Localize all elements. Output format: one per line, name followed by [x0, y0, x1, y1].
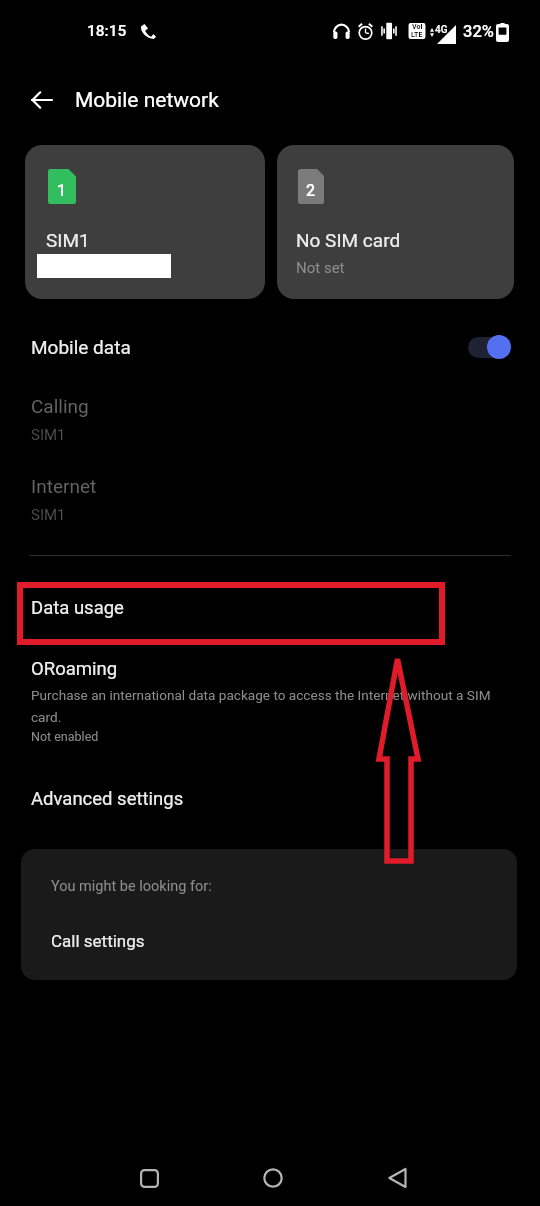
- button[interactable]: Home: [250, 1155, 296, 1201]
- staticText: Call settings: [51, 931, 145, 951]
- button[interactable]: Mobile data: [0, 318, 540, 376]
- button[interactable]: Call settings: [21, 911, 517, 971]
- staticText: 2: [306, 181, 316, 200]
- staticText: Not enabled: [31, 729, 99, 744]
- staticText: Calling: [31, 395, 89, 417]
- staticText: VoI: [412, 23, 423, 31]
- button[interactable]: Back: [374, 1155, 420, 1201]
- staticText: No SIM card: [296, 229, 401, 251]
- button[interactable]: Calling: [0, 393, 540, 453]
- button[interactable]: ORoaming: [0, 652, 540, 744]
- staticText: 32%: [463, 22, 494, 41]
- staticText: Mobile network: [75, 88, 219, 113]
- staticText: SIM1: [46, 229, 90, 251]
- staticText: Advanced settings: [31, 788, 184, 810]
- staticText: 1: [57, 181, 67, 200]
- staticText: LTE: [411, 31, 423, 39]
- staticText: Mobile data: [31, 336, 131, 358]
- staticText: SIM1: [31, 426, 66, 444]
- staticText: SIM1: [31, 506, 66, 524]
- staticText: Not set: [296, 259, 345, 277]
- staticText: 4G: [435, 24, 448, 36]
- staticText: Data usage: [31, 597, 124, 619]
- button[interactable]: 2: [277, 145, 514, 299]
- staticText: Internet: [31, 475, 97, 497]
- staticText: 18:15: [87, 22, 127, 40]
- button[interactable]: Internet: [0, 473, 540, 533]
- button[interactable]: Back: [21, 79, 63, 121]
- staticText: Purchase an international data package t…: [31, 687, 510, 726]
- button[interactable]: Data usage: [0, 582, 540, 634]
- staticText: You might be looking for:: [51, 878, 212, 895]
- button[interactable]: Advanced settings: [0, 778, 540, 820]
- button[interactable]: 1: [25, 145, 265, 299]
- button[interactable]: Recents: [126, 1155, 172, 1201]
- staticText: ORoaming: [31, 658, 118, 680]
